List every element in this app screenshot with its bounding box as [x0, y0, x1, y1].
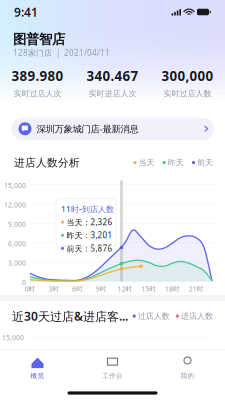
staticText: 前天	[197, 158, 213, 167]
staticText: 12,000	[4, 200, 26, 209]
staticText: 389.980	[11, 67, 63, 85]
staticText: 图普智店	[13, 31, 65, 47]
staticText: 9,000	[8, 220, 26, 229]
staticText: 340.467	[86, 67, 138, 85]
staticText: 9:41	[14, 4, 38, 20]
staticText: 前天：5,876	[66, 243, 112, 254]
staticText: 300,000	[161, 67, 213, 85]
staticText: 128家门店 | 2021/04/11	[13, 47, 110, 58]
staticText: 3时	[48, 284, 59, 293]
staticText: 概览	[30, 372, 44, 380]
staticText: 过店人数	[138, 311, 170, 321]
staticText: 近30天过店&进店客流趋势	[12, 308, 130, 324]
button[interactable]: 概览	[0, 353, 75, 383]
staticText: 昨天	[168, 158, 184, 167]
staticText: 昨天：3,201	[66, 230, 112, 240]
staticText: 实时过店人次	[13, 89, 61, 98]
staticText: 15时	[141, 284, 156, 293]
staticText: 当天	[139, 158, 155, 167]
staticText: 0时	[24, 284, 35, 293]
staticText: 工作台	[102, 372, 123, 380]
staticText: 0	[22, 278, 26, 287]
staticText: 18时	[165, 284, 180, 293]
staticText: 3,000	[8, 258, 26, 267]
staticText: 深圳万象城门店-最新消息	[36, 123, 138, 135]
staticText: 当天：2,326	[66, 217, 112, 227]
staticText: 15,000	[2, 333, 24, 342]
button[interactable]: 我的	[150, 353, 225, 383]
staticText: 11时-到店人数	[61, 204, 114, 214]
staticText: 21时	[189, 284, 204, 293]
staticText: 实时进店人次	[88, 89, 136, 98]
staticText: 我的	[180, 372, 194, 380]
staticText: 6,000	[8, 239, 26, 248]
staticText: 9时	[96, 284, 107, 293]
staticText: 进店人数分析	[14, 156, 80, 169]
staticText: 6时	[72, 284, 83, 293]
staticText: 进店人数	[181, 311, 213, 321]
button[interactable]: 工作台	[75, 353, 150, 383]
staticText: 实时过店人数	[163, 89, 211, 98]
staticText: 12时	[117, 284, 132, 293]
staticText: 15,000	[4, 181, 26, 190]
button[interactable]: 深圳万象城门店-最新消息	[11, 117, 214, 140]
